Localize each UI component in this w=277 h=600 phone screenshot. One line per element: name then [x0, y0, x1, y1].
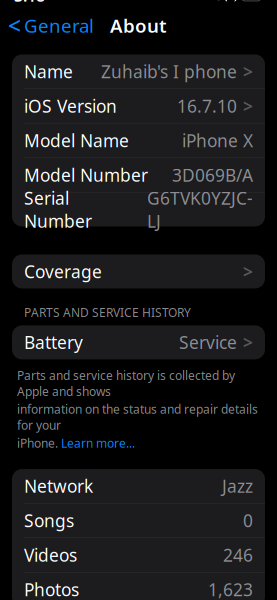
- staticText: >: [243, 331, 253, 354]
- staticText: PARTS AND SERVICE HISTORY: [24, 304, 191, 320]
- staticText: Model Name: [24, 129, 129, 152]
- staticText: Battery: [24, 331, 83, 354]
- staticText: Service: [179, 331, 237, 354]
- staticText: information on the status and repair det…: [17, 401, 258, 433]
- staticText: 1,623: [208, 578, 253, 600]
- staticText: Coverage: [24, 260, 102, 283]
- button[interactable]: <: [0, 5, 94, 45]
- staticText: <: [8, 10, 21, 40]
- button[interactable]: Videos: [12, 538, 265, 572]
- staticText: General: [24, 13, 94, 38]
- button[interactable]: Coverage: [12, 254, 265, 288]
- button[interactable]: Battery: [12, 325, 265, 359]
- button[interactable]: Model Number: [12, 158, 265, 192]
- staticText: 3D069B/A: [172, 163, 253, 186]
- button[interactable]: Model Name: [12, 123, 265, 157]
- staticText: Zuhaib's I phone: [101, 60, 237, 83]
- staticText: 3:18: [14, 0, 45, 6]
- staticText: Serial Number: [24, 186, 92, 232]
- staticText: 0: [243, 509, 253, 532]
- button[interactable]: Learn more...: [61, 435, 135, 451]
- button[interactable]: iOS Version: [12, 89, 265, 123]
- staticText: Learn more...: [61, 435, 135, 451]
- button[interactable]: Songs: [12, 504, 265, 538]
- staticText: iOS Version: [24, 94, 117, 117]
- staticText: Jazz: [222, 474, 253, 497]
- button[interactable]: Network: [12, 469, 265, 503]
- staticText: Model Number: [24, 163, 148, 186]
- staticText: Songs: [24, 509, 74, 532]
- staticText: >: [243, 260, 253, 283]
- staticText: >: [243, 60, 253, 83]
- staticText: 68: [245, 0, 257, 3]
- staticText: Videos: [24, 543, 77, 566]
- staticText: iPhone.: [17, 435, 58, 451]
- button[interactable]: Photos: [12, 573, 265, 600]
- staticText: iPhone X: [182, 129, 253, 152]
- staticText: G6TVK0YZJCLJ: [147, 186, 253, 232]
- staticText: Photos: [24, 578, 79, 600]
- staticText: About: [110, 13, 167, 38]
- button[interactable]: Serial Number: [12, 192, 265, 226]
- staticText: 16.7.10: [177, 94, 237, 117]
- staticText: Name: [24, 60, 73, 83]
- button[interactable]: Name: [12, 54, 265, 88]
- staticText: 246: [223, 543, 253, 566]
- staticText: Parts and service history is collected b…: [17, 367, 235, 399]
- staticText: >: [243, 94, 253, 117]
- staticText: Network: [24, 474, 93, 497]
